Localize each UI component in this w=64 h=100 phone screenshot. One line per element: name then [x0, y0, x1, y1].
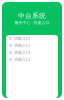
staticText: 中台系统	[18, 12, 46, 20]
staticText: 功能入口	[14, 36, 30, 41]
staticText: 功能入口	[14, 43, 30, 48]
staticText: 服务中心 · 快捷入口	[14, 20, 49, 25]
staticText: 功能入口	[14, 57, 30, 62]
staticText: 功能入口	[14, 50, 30, 55]
